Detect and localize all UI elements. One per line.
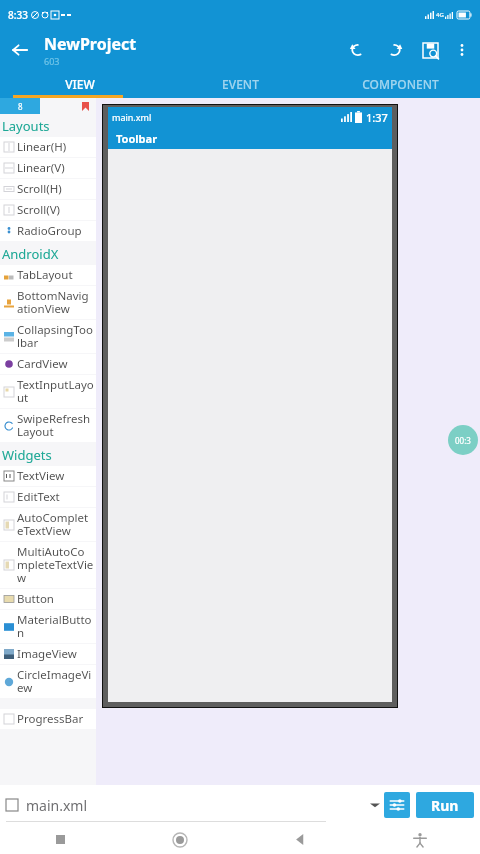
staticText: VIEW: [65, 76, 95, 92]
staticText: Scroll(V): [17, 202, 61, 218]
staticText: COMPONENT: [362, 76, 439, 92]
button[interactable]: Bookmark: [74, 98, 96, 114]
button[interactable]: Scroll(H): [0, 179, 96, 199]
button[interactable]: BottomNavigationView: [0, 286, 96, 319]
staticText: CardView: [17, 356, 68, 372]
staticText: Run: [431, 796, 459, 815]
button[interactable]: VIEW: [0, 70, 160, 98]
staticText: MultiAutoCompleteTextView: [17, 544, 94, 586]
button[interactable]: Redo: [376, 32, 412, 68]
button[interactable]: Scroll(V): [0, 200, 96, 220]
button[interactable]: ProgressBar: [0, 709, 96, 729]
button[interactable]: MaterialButton: [0, 610, 96, 643]
button[interactable]: More options: [448, 36, 476, 64]
staticText: AndroidX: [2, 245, 59, 263]
button[interactable]: Button: [0, 589, 96, 609]
staticText: TabLayout: [17, 267, 73, 283]
button[interactable]: TextInputLayout: [0, 375, 96, 408]
staticText: EVENT: [222, 76, 259, 92]
button[interactable]: Accessibility: [360, 825, 480, 854]
button[interactable]: AutoCompleteTextView: [0, 508, 96, 541]
button[interactable]: EditText: [0, 487, 96, 507]
staticText: BottomNavigationView: [17, 288, 94, 317]
button[interactable]: 8: [0, 98, 40, 114]
staticText: Button: [17, 591, 54, 607]
button[interactable]: Linear(V): [0, 158, 96, 178]
button[interactable]: Run: [416, 792, 474, 818]
staticText: TextView: [17, 468, 65, 484]
staticText: AutoCompleteTextView: [17, 510, 94, 539]
staticText: 00:3: [455, 435, 471, 446]
button[interactable]: Back: [240, 825, 360, 854]
staticText: MaterialButton: [17, 612, 94, 641]
staticText: EditText: [17, 489, 60, 505]
button[interactable]: CollapsingToolbar: [0, 320, 96, 353]
staticText: CircleImageView: [17, 667, 94, 696]
button[interactable]: ImageView: [0, 644, 96, 664]
staticText: main.xml: [26, 796, 88, 815]
button[interactable]: Save: [412, 32, 448, 68]
button[interactable]: main.xml: [6, 785, 384, 825]
staticText: RadioGroup: [17, 223, 82, 239]
button[interactable]: COMPONENT: [320, 70, 480, 98]
staticText: Scroll(H): [17, 181, 62, 197]
staticText: 1:37: [366, 110, 388, 125]
button[interactable]: Undo: [340, 32, 376, 68]
staticText: 4G: [436, 11, 444, 19]
button[interactable]: Home: [120, 825, 240, 854]
staticText: Linear(H): [17, 139, 67, 155]
staticText: Widgets: [2, 446, 52, 464]
staticText: TextInputLayout: [17, 377, 94, 406]
staticText: 8:33: [8, 8, 28, 22]
staticText: NewProject: [44, 33, 137, 55]
button[interactable]: Toolbar: [108, 127, 392, 149]
button[interactable]: EVENT: [160, 70, 320, 98]
button[interactable]: TabLayout: [0, 265, 96, 285]
staticText: SwipeRefreshLayout: [17, 411, 94, 440]
button[interactable]: MultiAutoCompleteTextView: [0, 542, 96, 588]
staticText: Layouts: [2, 117, 50, 135]
button[interactable]: SwipeRefreshLayout: [0, 409, 96, 442]
staticText: 8: [18, 101, 23, 112]
staticText: ImageView: [17, 646, 77, 662]
button[interactable]: RadioGroup: [0, 221, 96, 241]
staticText: ProgressBar: [17, 711, 84, 727]
staticText: main.xml: [112, 111, 152, 123]
button[interactable]: Recent apps: [0, 825, 120, 854]
button[interactable]: Linear(H): [0, 137, 96, 157]
button[interactable]: Settings: [384, 792, 410, 818]
button[interactable]: CardView: [0, 354, 96, 374]
staticText: 603: [44, 55, 60, 67]
staticText: CollapsingToolbar: [17, 322, 94, 351]
staticText: Linear(V): [17, 160, 65, 176]
button[interactable]: CircleImageView: [0, 665, 96, 698]
button[interactable]: Screen recorder: [448, 425, 478, 455]
staticText: Toolbar: [116, 131, 158, 146]
button[interactable]: TextView: [0, 466, 96, 486]
button[interactable]: Back: [0, 30, 40, 70]
